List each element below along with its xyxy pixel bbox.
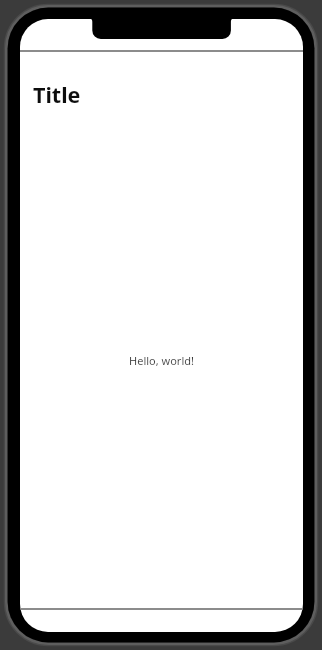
staticText: Hello, world! bbox=[20, 353, 303, 368]
staticText: Title bbox=[33, 80, 81, 109]
